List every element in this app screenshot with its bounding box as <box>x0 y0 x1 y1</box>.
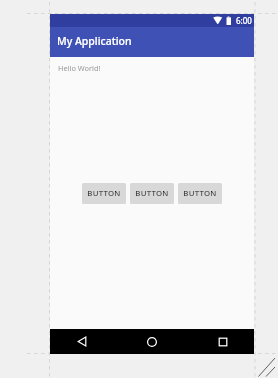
button[interactable]: Back <box>64 329 100 354</box>
button[interactable]: Home <box>134 329 170 354</box>
staticText: Hello World! <box>58 63 101 73</box>
staticText: BUTTON <box>135 188 169 199</box>
button[interactable]: BUTTON <box>178 183 222 204</box>
staticText: My Application <box>57 34 132 48</box>
staticText: BUTTON <box>87 188 121 199</box>
staticText: BUTTON <box>183 188 217 199</box>
button[interactable]: BUTTON <box>82 183 126 204</box>
button[interactable]: Recent apps <box>205 329 241 354</box>
staticText: 6:00 <box>236 15 252 26</box>
button[interactable]: BUTTON <box>130 183 174 204</box>
